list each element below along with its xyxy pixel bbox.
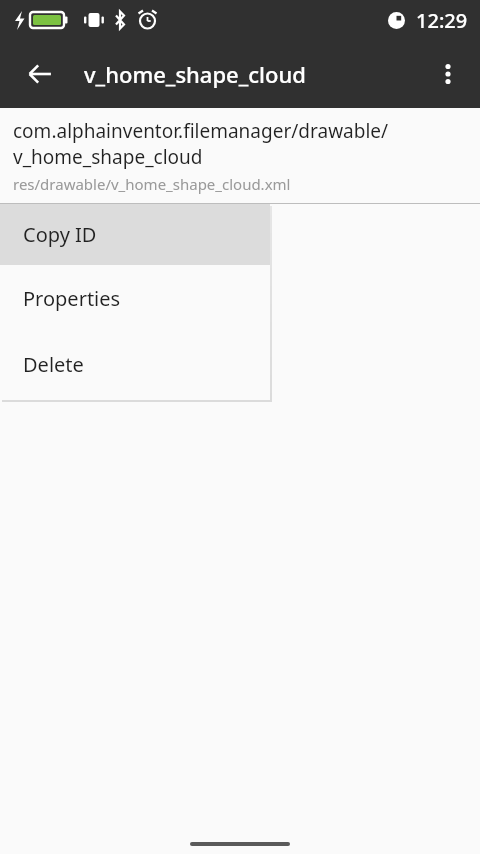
button[interactable]: Properties <box>0 265 270 331</box>
button[interactable]: Navigate up <box>16 50 64 98</box>
staticText: 12:29 <box>416 7 468 34</box>
staticText: com.alphainventor.filemanager/drawable/ … <box>13 118 389 170</box>
staticText: res/drawable/v_home_shape_cloud.xml <box>13 174 291 194</box>
button[interactable]: Delete <box>0 331 270 397</box>
button[interactable]: Copy ID <box>0 204 270 265</box>
staticText: Properties <box>23 285 121 312</box>
staticText: v_home_shape_cloud <box>84 59 306 89</box>
button[interactable]: More options <box>424 50 472 98</box>
staticText: Delete <box>23 351 84 378</box>
staticText: Copy ID <box>23 221 97 248</box>
